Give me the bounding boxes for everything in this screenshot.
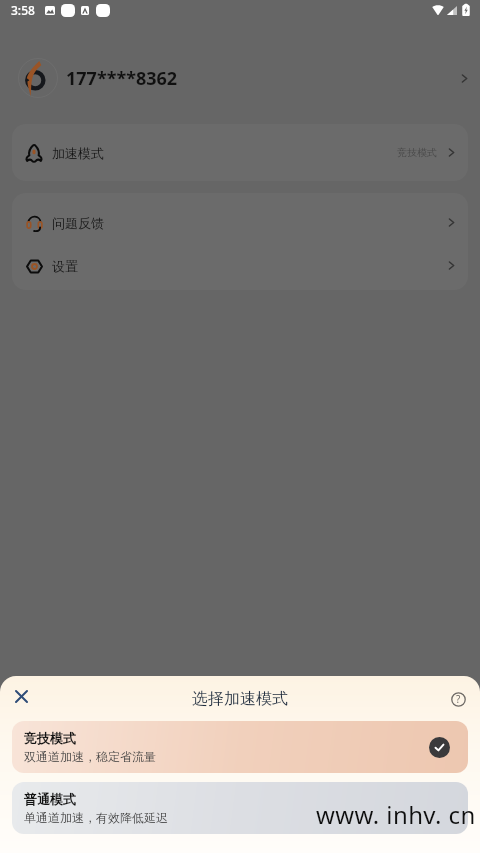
button[interactable]: 竞技模式 [12, 721, 468, 773]
staticText: ? [456, 692, 461, 706]
button[interactable]: 普通模式 [12, 782, 468, 834]
button[interactable]: 加速模式 [12, 124, 468, 181]
staticText: 普通模式 [24, 791, 76, 807]
button[interactable]: 问题反馈 [12, 201, 468, 244]
staticText: www. inhv. cn [316, 798, 476, 831]
button[interactable]: 关闭 [8, 683, 34, 709]
staticText: 双通道加速，稳定省流量 [24, 749, 156, 764]
button[interactable]: 帮助 [445, 686, 471, 712]
staticText: 3:58 [11, 2, 35, 18]
staticText: 加速模式 [52, 145, 104, 161]
staticText: 问题反馈 [52, 215, 104, 231]
staticText: 设置 [52, 258, 78, 274]
staticText: 竞技模式 [397, 146, 437, 159]
staticText: 177****8362 [66, 66, 178, 91]
button[interactable]: 设置 [12, 244, 468, 287]
button[interactable]: 177****8362 [0, 46, 480, 110]
staticText: 选择加速模式 [192, 689, 288, 709]
staticText: 单通道加速，有效降低延迟 [24, 810, 168, 825]
staticText: 竞技模式 [24, 730, 76, 746]
